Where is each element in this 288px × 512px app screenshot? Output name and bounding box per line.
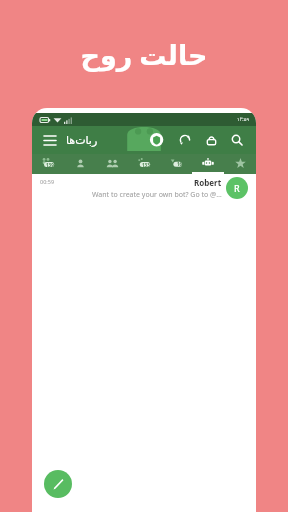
- button[interactable]: Groups: [96, 154, 128, 172]
- button[interactable]: All chats: [32, 154, 64, 172]
- staticText: Robert: [194, 177, 222, 188]
- staticText: 16: [177, 161, 183, 167]
- button[interactable]: Menu: [40, 130, 60, 150]
- staticText: Want to create your own bot? Go to @…: [92, 190, 222, 200]
- button[interactable]: Favorites: [224, 154, 256, 172]
- button[interactable]: Compose: [44, 470, 72, 498]
- staticText: حالت روح: [80, 36, 208, 73]
- button[interactable]: 00:59: [32, 174, 256, 204]
- staticText: ربات‌ها: [66, 134, 98, 147]
- button[interactable]: Private: [64, 154, 96, 172]
- button[interactable]: Refresh: [174, 129, 196, 151]
- staticText: ۱۲:۵۹: [237, 116, 250, 123]
- button[interactable]: Unread: [128, 154, 160, 172]
- staticText: R: [234, 182, 240, 194]
- staticText: 133: [142, 162, 150, 168]
- button[interactable]: Search: [226, 129, 248, 151]
- button[interactable]: Bots: [192, 154, 224, 172]
- button[interactable]: Lock: [200, 129, 222, 151]
- button[interactable]: Muted: [160, 154, 192, 172]
- staticText: 00:59: [40, 178, 55, 185]
- staticText: 139: [46, 162, 54, 168]
